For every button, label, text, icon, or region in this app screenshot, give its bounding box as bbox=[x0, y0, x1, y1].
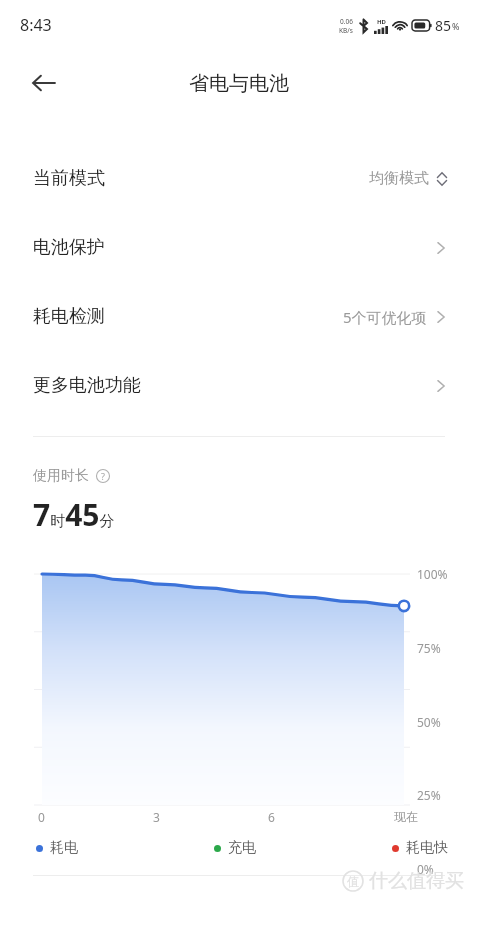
button[interactable]: 更多电池功能 bbox=[0, 351, 478, 420]
staticText: 更多电池功能 bbox=[33, 374, 141, 397]
staticText: 50% bbox=[417, 714, 441, 730]
staticText: 75% bbox=[417, 640, 441, 656]
button[interactable]: Help bbox=[96, 469, 110, 483]
staticText: 0.06 bbox=[340, 17, 353, 26]
staticText: 省电与电池 bbox=[189, 71, 289, 96]
button[interactable]: Back bbox=[22, 61, 66, 105]
button[interactable]: 电池保护 bbox=[0, 213, 478, 282]
button[interactable]: 充电 bbox=[214, 839, 256, 857]
staticText: HD bbox=[377, 18, 386, 26]
staticText: 什么值得买 bbox=[369, 869, 464, 893]
staticText: 7时45分 bbox=[33, 494, 115, 535]
staticText: 0% bbox=[417, 861, 434, 877]
staticText: 现在 bbox=[394, 809, 418, 824]
staticText: 电池保护 bbox=[33, 236, 105, 259]
button[interactable]: 耗电快 bbox=[392, 839, 448, 857]
staticText: 5个可优化项 bbox=[343, 307, 427, 327]
staticText: 耗电检测 bbox=[33, 305, 105, 328]
button[interactable]: 耗电检测 bbox=[0, 282, 478, 351]
staticText: 均衡模式 bbox=[369, 169, 429, 188]
button[interactable]: 耗电 bbox=[36, 839, 78, 857]
staticText: 当前模式 bbox=[33, 167, 105, 190]
staticText: 100% bbox=[417, 566, 448, 582]
staticText: 值 bbox=[347, 874, 359, 889]
staticText: % bbox=[452, 20, 460, 32]
staticText: 使用时长 bbox=[33, 467, 89, 485]
staticText: 耗电快 bbox=[406, 839, 448, 857]
staticText: 8:43 bbox=[20, 14, 52, 36]
staticText: 充电 bbox=[228, 839, 256, 857]
staticText: 25% bbox=[417, 787, 441, 803]
staticText: 0 bbox=[38, 809, 45, 825]
staticText: 耗电 bbox=[50, 839, 78, 857]
staticText: 3 bbox=[153, 809, 160, 825]
staticText: KB/s bbox=[339, 26, 353, 35]
button[interactable]: 当前模式 bbox=[0, 144, 478, 213]
staticText: ? bbox=[101, 470, 105, 482]
staticText: 6 bbox=[268, 809, 275, 825]
staticText: 85 bbox=[435, 16, 452, 35]
